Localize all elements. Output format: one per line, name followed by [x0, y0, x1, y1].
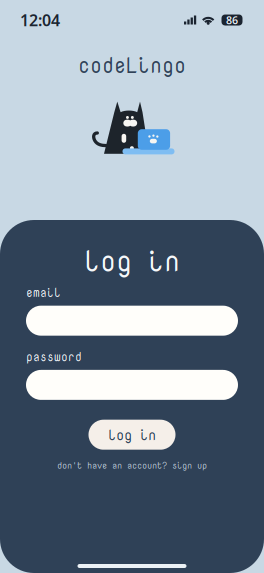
button[interactable] [26, 306, 238, 336]
button[interactable] [26, 370, 238, 400]
staticText: password [26, 348, 82, 365]
button[interactable]: don't have an account? sign up [57, 459, 207, 472]
staticText: log in [84, 240, 180, 280]
button[interactable]: log in [88, 420, 175, 450]
staticText: email [26, 284, 61, 301]
staticText: codeLingo [78, 50, 186, 80]
staticText: 86 [226, 13, 238, 27]
staticText: log in [108, 424, 156, 445]
staticText: don't have an account? sign up [57, 459, 207, 472]
staticText: 12:04 [20, 9, 60, 31]
